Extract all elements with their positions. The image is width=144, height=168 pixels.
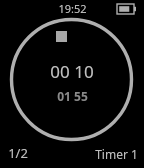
staticText: 1/2 xyxy=(8,144,28,162)
staticText: 00 10 xyxy=(50,60,94,83)
button[interactable] xyxy=(0,0,144,168)
staticText: Timer 1 xyxy=(95,146,138,162)
staticText: 19:52 xyxy=(58,1,87,16)
button[interactable]: Timer 1 xyxy=(95,146,138,162)
button[interactable]: Battery xyxy=(117,4,136,14)
button[interactable]: 1/2 xyxy=(8,144,28,162)
staticText: 01 55 xyxy=(57,88,88,104)
